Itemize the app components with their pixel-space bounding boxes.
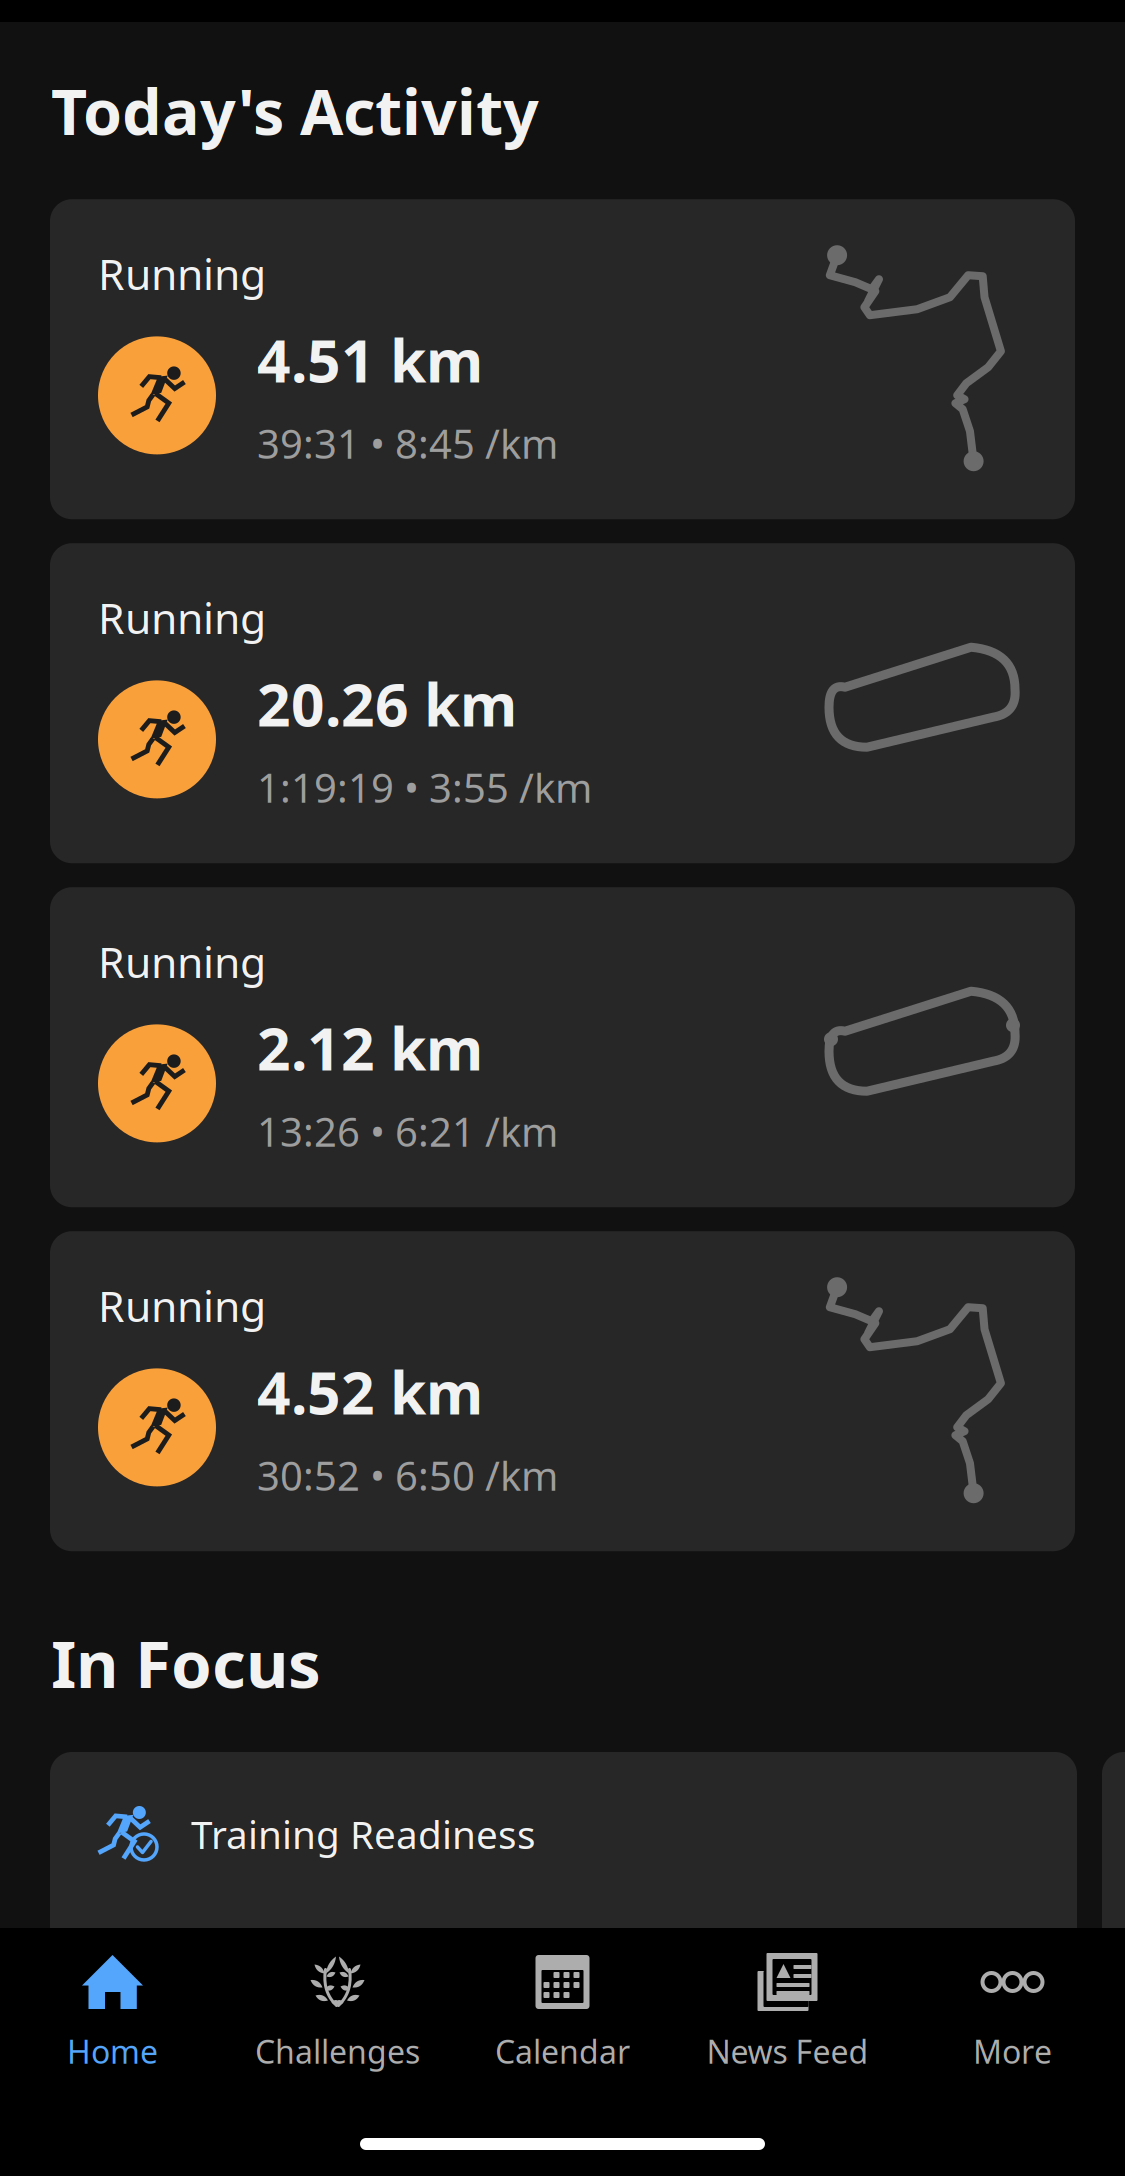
button[interactable]: Running [50,887,1075,1207]
button[interactable]: News Feed [675,1954,900,2072]
button[interactable]: Running [50,1231,1075,1551]
staticText: 39:31 • 8:45 /km [257,417,558,470]
button[interactable]: Challenges [225,1954,450,2072]
button[interactable]: More [900,1954,1125,2072]
button[interactable]: Running [50,543,1075,863]
staticText: More [973,2030,1052,2072]
staticText: Home [67,2030,158,2072]
staticText: Running [98,245,266,302]
staticText: Challenges [255,2030,420,2072]
staticText: 13:26 • 6:21 /km [257,1105,558,1158]
staticText: 2.12 km [257,1009,483,1087]
staticText: 4.52 km [257,1353,483,1431]
staticText: 30:52 • 6:50 /km [257,1449,558,1502]
staticText: News Feed [706,2030,868,2072]
staticText: In Focus [51,1619,321,1706]
button[interactable]: Calendar [450,1954,675,2072]
staticText: Today's Activity [51,69,539,152]
staticText: 20.26 km [257,665,517,743]
staticText: Running [98,589,266,646]
staticText: Calendar [495,2030,630,2072]
staticText: 1:19:19 • 3:55 /km [257,761,592,814]
button[interactable]: Home [0,1954,225,2072]
staticText: Training Readiness [191,1808,536,1860]
button[interactable]: Running [50,199,1075,519]
staticText: Running [98,933,266,990]
staticText: 4.51 km [257,321,483,399]
button[interactable]: Training Readiness [50,1752,1077,2052]
staticText: Running [98,1277,266,1334]
